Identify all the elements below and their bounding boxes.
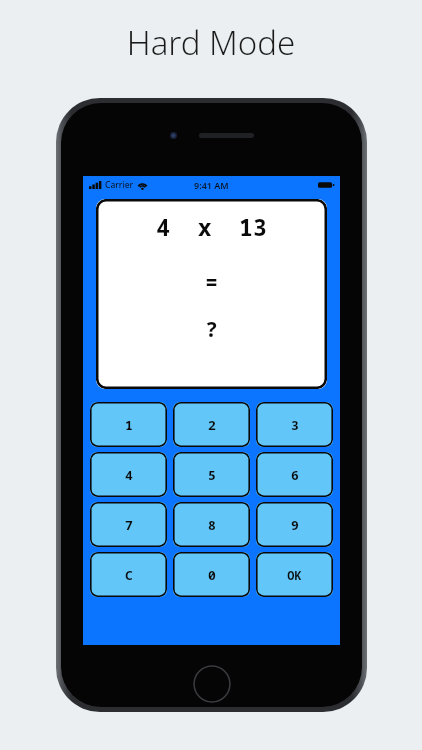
button[interactable]: 2 xyxy=(173,402,250,447)
button[interactable]: Home xyxy=(193,665,231,703)
staticText: ? xyxy=(205,315,218,344)
staticText: 6 xyxy=(291,466,299,484)
staticText: C xyxy=(125,566,133,584)
button[interactable]: 4 xyxy=(90,452,167,497)
staticText: 9 xyxy=(291,516,299,534)
staticText: 0 xyxy=(208,566,216,584)
staticText: OK xyxy=(287,567,302,583)
staticText: 2 xyxy=(208,416,216,434)
button[interactable]: 6 xyxy=(256,452,333,497)
button[interactable]: 3 xyxy=(256,402,333,447)
staticText: 8 xyxy=(208,516,216,534)
button[interactable]: 4 x 13 xyxy=(96,199,327,389)
staticText: = xyxy=(205,268,218,297)
staticText: 9:41 AM xyxy=(194,179,229,191)
staticText: 1 xyxy=(125,416,133,434)
button[interactable]: 9 xyxy=(256,502,333,547)
button[interactable]: 7 xyxy=(90,502,167,547)
staticText: Carrier xyxy=(105,179,134,191)
staticText: Hard Mode xyxy=(0,20,422,65)
staticText: 4 x 13 xyxy=(156,211,267,242)
staticText: 4 xyxy=(125,466,133,484)
button[interactable]: 1 xyxy=(90,402,167,447)
button[interactable]: OK xyxy=(256,552,333,597)
staticText: 5 xyxy=(208,466,216,484)
staticText: 7 xyxy=(125,516,133,534)
button[interactable]: 5 xyxy=(173,452,250,497)
button[interactable]: 0 xyxy=(173,552,250,597)
staticText: 3 xyxy=(291,416,299,434)
button[interactable]: C xyxy=(90,552,167,597)
button[interactable]: 8 xyxy=(173,502,250,547)
